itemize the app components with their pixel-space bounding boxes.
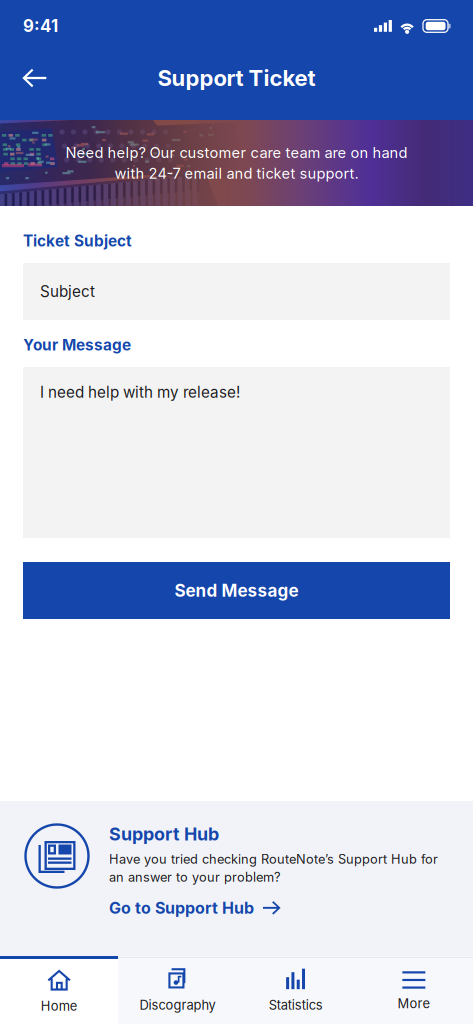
staticText: with 24-7 email and ticket support.: [114, 164, 358, 182]
staticText: More: [397, 996, 430, 1011]
staticText: Your Message: [23, 336, 131, 354]
button[interactable]: Subject: [23, 263, 450, 320]
staticText: Support Hub: [109, 823, 219, 845]
button[interactable]: Send Message: [23, 562, 450, 619]
button[interactable]: Statistics: [236, 956, 355, 1024]
button[interactable]: I need help with my release!: [23, 367, 450, 538]
staticText: Statistics: [269, 997, 323, 1013]
staticText: Need help? Our customer care team are on…: [65, 144, 407, 161]
staticText: Support Ticket: [157, 65, 315, 91]
button[interactable]: More: [355, 956, 473, 1024]
staticText: an answer to your problem?: [109, 869, 281, 885]
staticText: Ticket Subject: [23, 232, 132, 250]
staticText: Discography: [139, 997, 215, 1013]
staticText: 9:41: [23, 16, 58, 36]
staticText: I need help with my release!: [40, 383, 240, 401]
button[interactable]: Discography: [118, 956, 236, 1024]
staticText: Send Message: [174, 580, 298, 601]
staticText: Subject: [40, 282, 95, 301]
button[interactable]: Back: [11, 52, 58, 104]
button[interactable]: Home: [0, 956, 118, 1024]
staticText: Have you tried checking RouteNote’s Supp…: [109, 851, 438, 867]
button[interactable]: Support Hub: [0, 801, 473, 956]
staticText: Go to Support Hub: [109, 898, 254, 918]
staticText: Home: [41, 998, 78, 1014]
